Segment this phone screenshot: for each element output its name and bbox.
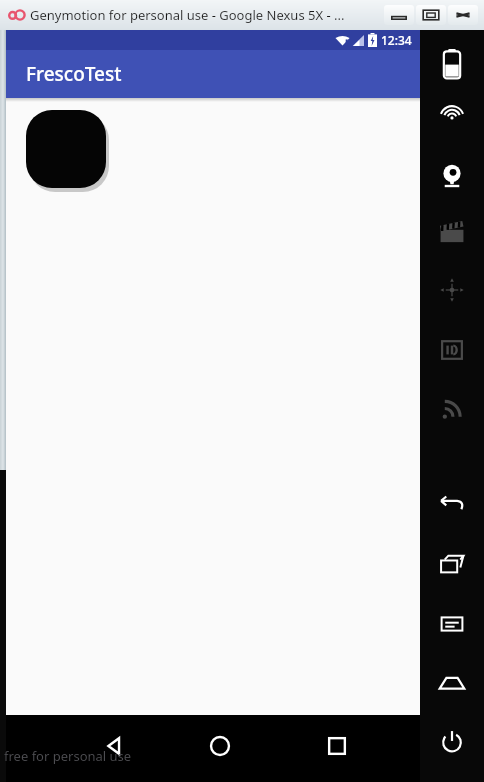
staticText: Genymotion for personal use - Google Nex… (30, 6, 345, 24)
button[interactable]: Close (448, 5, 478, 25)
button[interactable]: Power (430, 722, 474, 762)
button[interactable]: Camera (430, 156, 474, 196)
button[interactable]: Home (206, 732, 234, 760)
button[interactable]: More options (442, 732, 470, 760)
staticText: FrescoTest (26, 61, 122, 87)
button[interactable]: Menu (430, 606, 474, 642)
button[interactable]: Image (26, 110, 106, 188)
button[interactable]: Battery (430, 42, 474, 86)
button[interactable]: Accelerometer (430, 270, 474, 310)
staticText: free for personal use (4, 747, 132, 765)
button[interactable]: Recent apps (430, 546, 474, 582)
button[interactable]: Back (430, 486, 474, 522)
button[interactable]: Home (430, 666, 474, 700)
button[interactable]: Network (430, 390, 474, 428)
button[interactable]: Video (430, 214, 474, 250)
button[interactable]: GPS (430, 100, 474, 140)
button[interactable]: Recents (323, 732, 351, 760)
staticText: 12:34 (381, 32, 412, 48)
button[interactable]: Minimize (384, 5, 414, 25)
button[interactable]: Back (100, 732, 128, 760)
button[interactable]: Restore (416, 5, 446, 25)
button[interactable]: Identifiers (430, 332, 474, 368)
